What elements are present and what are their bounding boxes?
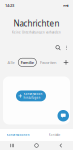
button[interactable]: Mehr Optionen <box>63 43 70 52</box>
staticText: Keine Unterhaltungen vorhanden <box>12 31 61 34</box>
button[interactable]: Konversation <box>16 90 46 101</box>
staticText: Nachrichten <box>13 18 59 29</box>
staticText: Kontakte <box>49 133 61 137</box>
staticText: Familie <box>21 60 34 65</box>
staticText: Konversationen <box>7 133 30 137</box>
staticText: Konversation <box>24 92 43 96</box>
button[interactable]: Startbildschirm <box>24 141 49 150</box>
button[interactable]: Suchen <box>54 43 62 52</box>
button[interactable]: Kontakte <box>36 129 73 141</box>
button[interactable]: Favoriten <box>37 58 59 66</box>
staticText: ▰▰▮ <box>63 4 68 7</box>
staticText: hinzufügen <box>24 96 41 99</box>
button[interactable]: Neue Konversation <box>57 110 69 121</box>
staticText: Alle <box>8 60 15 65</box>
button[interactable]: Familie <box>18 58 36 66</box>
button[interactable]: Letzte Apps <box>0 141 24 150</box>
staticText: Favoriten <box>40 60 56 65</box>
button[interactable]: Konversationen <box>0 129 36 141</box>
staticText: 14:23 <box>5 3 14 8</box>
button[interactable]: Alle <box>5 58 17 66</box>
button[interactable]: Kategorie hinzufügen <box>62 58 70 66</box>
button[interactable]: Zurück <box>49 141 73 150</box>
